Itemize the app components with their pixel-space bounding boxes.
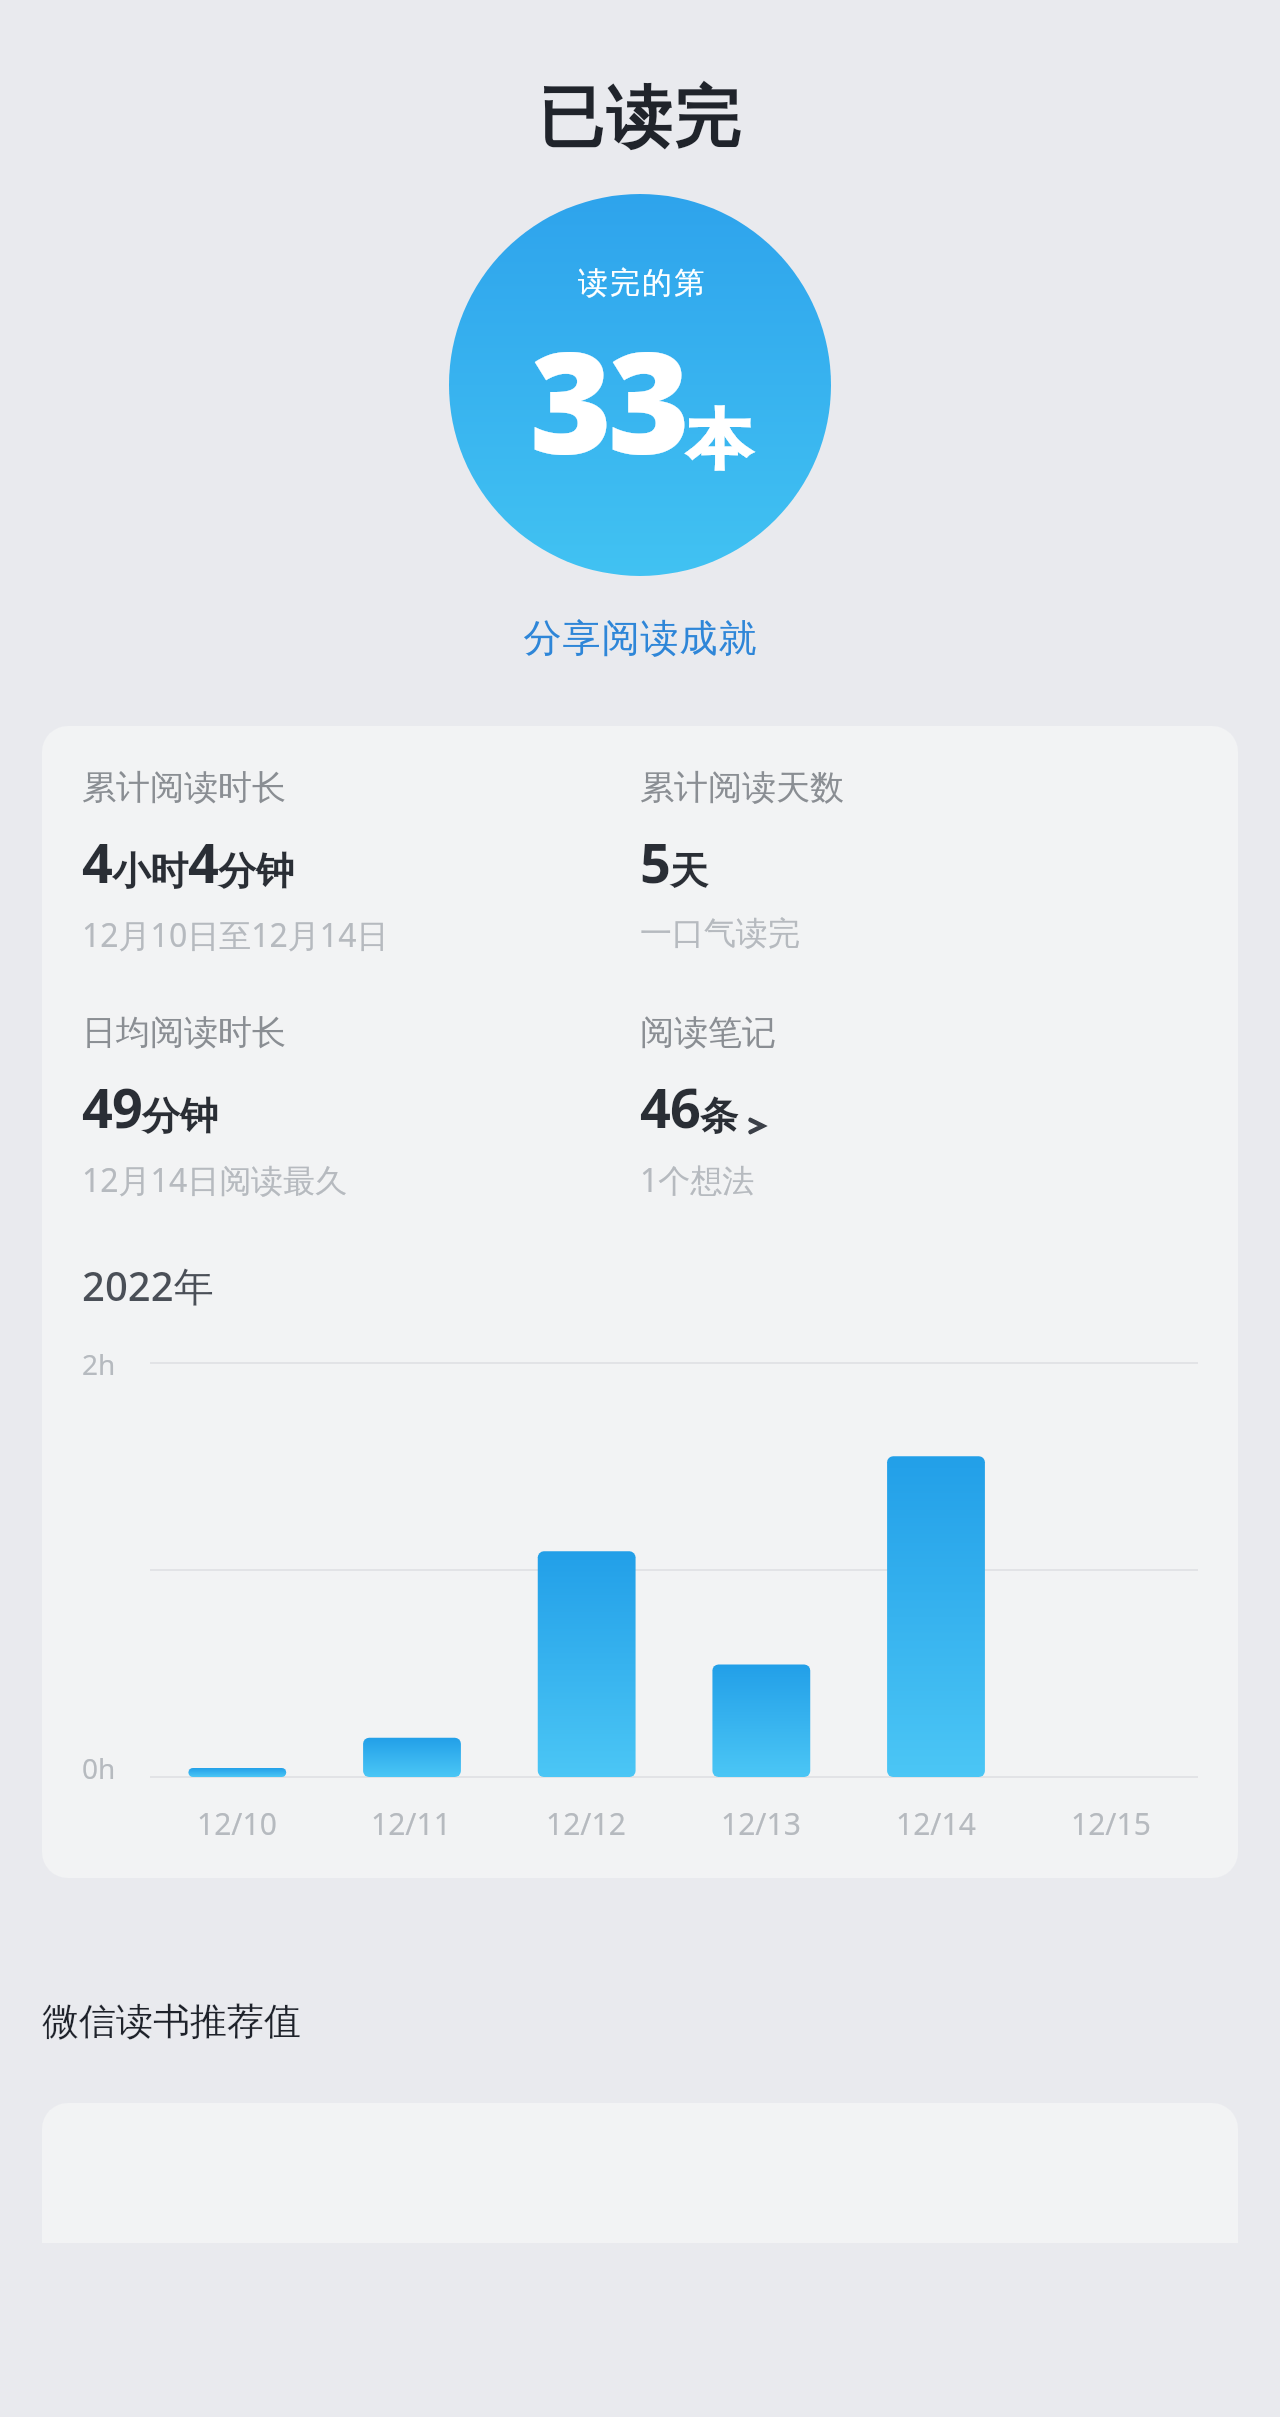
staticText: 4	[188, 825, 218, 899]
staticText: 12/14	[896, 1803, 976, 1844]
staticText: 46	[640, 1070, 700, 1144]
button[interactable]: 累计阅读天数	[640, 766, 1198, 953]
staticText: 2022年	[82, 1258, 214, 1313]
staticText: 12/15	[1071, 1803, 1151, 1844]
staticText: 分钟	[218, 847, 294, 895]
staticText: 微信读书推荐值	[42, 1998, 301, 2045]
staticText: 分钟	[142, 1092, 218, 1140]
button[interactable]: 日均阅读时长	[82, 1011, 640, 1202]
staticText: 0h	[82, 1749, 116, 1787]
staticText: 12月14日阅读最久	[82, 1158, 348, 1202]
staticText: 2h	[82, 1345, 116, 1383]
staticText: 分享阅读成就	[523, 614, 757, 662]
staticText: 已读完	[0, 76, 1280, 159]
button[interactable]: 分享阅读成就	[505, 608, 775, 668]
staticText: 33	[530, 304, 687, 495]
staticText: 49	[82, 1070, 142, 1144]
staticText: 阅读笔记	[640, 1011, 776, 1054]
staticText: 12/10	[197, 1803, 277, 1844]
staticText: 一口气读完	[640, 913, 800, 953]
staticText: 12/12	[546, 1803, 626, 1844]
staticText: 累计阅读时长	[82, 766, 286, 809]
staticText: 4	[82, 825, 112, 899]
staticText: 12/11	[371, 1803, 451, 1844]
button[interactable]: 阅读笔记	[640, 1011, 1198, 1202]
button[interactable]: 累计阅读时长	[82, 766, 640, 957]
staticText: 1个想法	[640, 1158, 755, 1202]
staticText: 累计阅读天数	[640, 766, 844, 809]
staticText: 日均阅读时长	[82, 1011, 286, 1054]
staticText: 天	[670, 847, 708, 895]
staticText: 12月10日至12月14日	[82, 913, 389, 957]
staticText: 读完的第	[577, 264, 705, 302]
staticText: 12/13	[721, 1803, 801, 1844]
staticText: 条	[700, 1092, 738, 1140]
staticText: 5	[640, 825, 670, 899]
staticText: 小时	[112, 847, 188, 895]
other: 查看阅读笔记	[744, 1118, 770, 1134]
staticText: 本	[687, 400, 751, 481]
